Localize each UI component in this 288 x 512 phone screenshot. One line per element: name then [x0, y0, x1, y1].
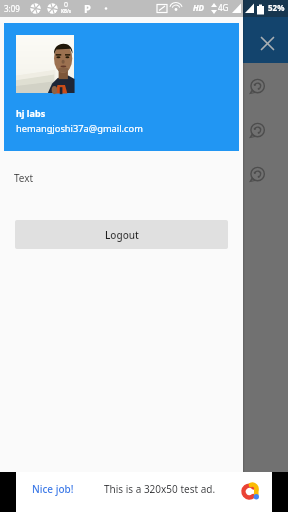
staticText: This is a 320x50 test ad. [104, 482, 216, 496]
staticText: HD [193, 2, 205, 13]
staticText: 52% [268, 2, 285, 13]
staticText: 0 [64, 0, 69, 10]
staticText: Nice job! [32, 482, 74, 496]
staticText: KB/s [61, 8, 72, 14]
button[interactable]: Chat [249, 167, 265, 183]
staticText: 3:09 [4, 3, 20, 14]
staticText: Logout [105, 228, 139, 242]
button[interactable]: Nice job! [16, 472, 272, 512]
button[interactable]: Chat [249, 123, 265, 139]
staticText: Text [14, 171, 34, 185]
staticText: hj labs [16, 107, 46, 119]
button[interactable]: Text [0, 167, 243, 189]
staticText: P [84, 1, 91, 16]
staticText: 4G [218, 2, 229, 13]
button[interactable]: Close [255, 31, 280, 56]
button[interactable]: Chat [249, 79, 265, 95]
staticText: hemangjoshi37a@gmail.com [16, 122, 143, 135]
button[interactable]: Logout [15, 220, 228, 249]
